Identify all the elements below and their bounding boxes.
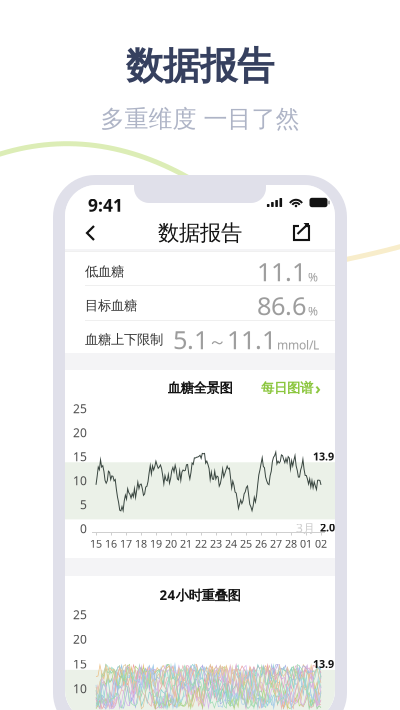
staticText: 28 xyxy=(285,536,297,551)
staticText: 低血糖 xyxy=(85,263,124,280)
staticText: 每日图谱 xyxy=(261,380,313,396)
staticText: 21 xyxy=(180,536,192,551)
staticText: 11.1 xyxy=(227,323,276,356)
staticText: 数据报告 xyxy=(126,43,274,89)
staticText: 25 xyxy=(73,606,87,622)
staticText: 5.1 xyxy=(173,323,208,356)
staticText: 22 xyxy=(195,536,207,551)
staticText: 02 xyxy=(315,536,327,551)
staticText: 19 xyxy=(150,536,162,551)
staticText: 15 xyxy=(73,448,87,464)
staticText: 24小时重叠图 xyxy=(159,586,240,604)
staticText: 15 xyxy=(73,656,87,672)
staticText: 血糖全景图 xyxy=(167,380,232,396)
staticText: 16 xyxy=(105,536,117,551)
staticText: 26 xyxy=(255,536,267,551)
staticText: % xyxy=(308,269,318,285)
staticText: 20 xyxy=(165,536,177,551)
staticText: 10 xyxy=(73,472,87,488)
staticText: 0 xyxy=(80,520,87,536)
staticText: 24 xyxy=(225,536,237,551)
staticText: ～ xyxy=(208,330,227,353)
staticText: 20 xyxy=(73,424,87,440)
staticText: 目标血糖 xyxy=(85,297,137,314)
staticText: 9:41 xyxy=(88,193,123,216)
staticText: 11.1 xyxy=(257,255,306,288)
staticText: 25 xyxy=(240,536,252,551)
staticText: 17 xyxy=(120,536,132,551)
staticText: 多重维度 一目了然 xyxy=(100,104,299,134)
staticText: 20 xyxy=(73,631,87,647)
staticText: 13.9 xyxy=(313,449,334,463)
staticText: 15 xyxy=(90,536,102,551)
button[interactable]: Share xyxy=(285,216,319,250)
staticText: 血糖上下限制 xyxy=(85,331,163,348)
staticText: 25 xyxy=(73,400,87,416)
staticText: 23 xyxy=(210,536,222,551)
staticText: 5 xyxy=(80,496,87,512)
staticText: 3月 xyxy=(296,520,315,536)
staticText: 86.6 xyxy=(257,289,306,322)
staticText: › xyxy=(315,377,321,399)
staticText: 01 xyxy=(300,536,312,551)
staticText: 27 xyxy=(270,536,282,551)
staticText: 13.9 xyxy=(313,657,334,671)
staticText: mmol/L xyxy=(277,337,319,353)
staticText: 数据报告 xyxy=(158,220,242,246)
staticText: 18 xyxy=(135,536,147,551)
staticText: 10 xyxy=(73,681,87,696)
button[interactable]: 每日图谱 xyxy=(261,378,321,398)
staticText: % xyxy=(308,303,318,319)
button[interactable]: Back xyxy=(81,216,115,250)
staticText: 2.0 xyxy=(320,520,335,534)
